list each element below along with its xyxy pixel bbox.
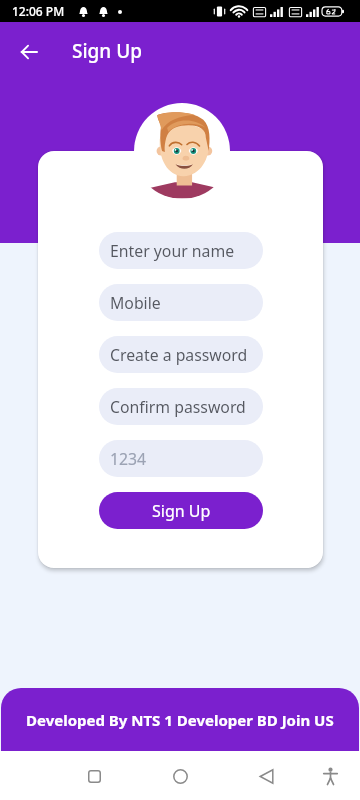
button[interactable]: Create a password (99, 336, 263, 373)
staticText: Confirm password (110, 396, 246, 418)
staticText: Sign Up (152, 500, 211, 522)
staticText: 12:06 PM (12, 3, 65, 19)
button[interactable]: Accessibility (310, 756, 350, 796)
staticText: Developed By NTS 1 Developer BD Join US (26, 710, 334, 730)
staticText: Sign Up (72, 38, 143, 64)
button[interactable]: Sign Up (99, 492, 263, 529)
button[interactable]: Confirm password (99, 388, 263, 425)
staticText: Mobile (110, 292, 161, 314)
staticText: Enter your name (110, 240, 235, 262)
button[interactable]: 1234 (99, 440, 263, 477)
button[interactable]: Home (160, 756, 200, 796)
staticText: Create a password (110, 344, 248, 366)
staticText: 1234 (110, 448, 147, 470)
button[interactable]: Mobile (99, 284, 263, 321)
button[interactable]: Back (246, 756, 286, 796)
button[interactable]: Enter your name (99, 232, 263, 269)
button[interactable]: Back (11, 34, 47, 70)
button[interactable]: Developed By NTS 1 Developer BD Join US (1, 688, 359, 751)
button[interactable]: Recents (74, 756, 114, 796)
